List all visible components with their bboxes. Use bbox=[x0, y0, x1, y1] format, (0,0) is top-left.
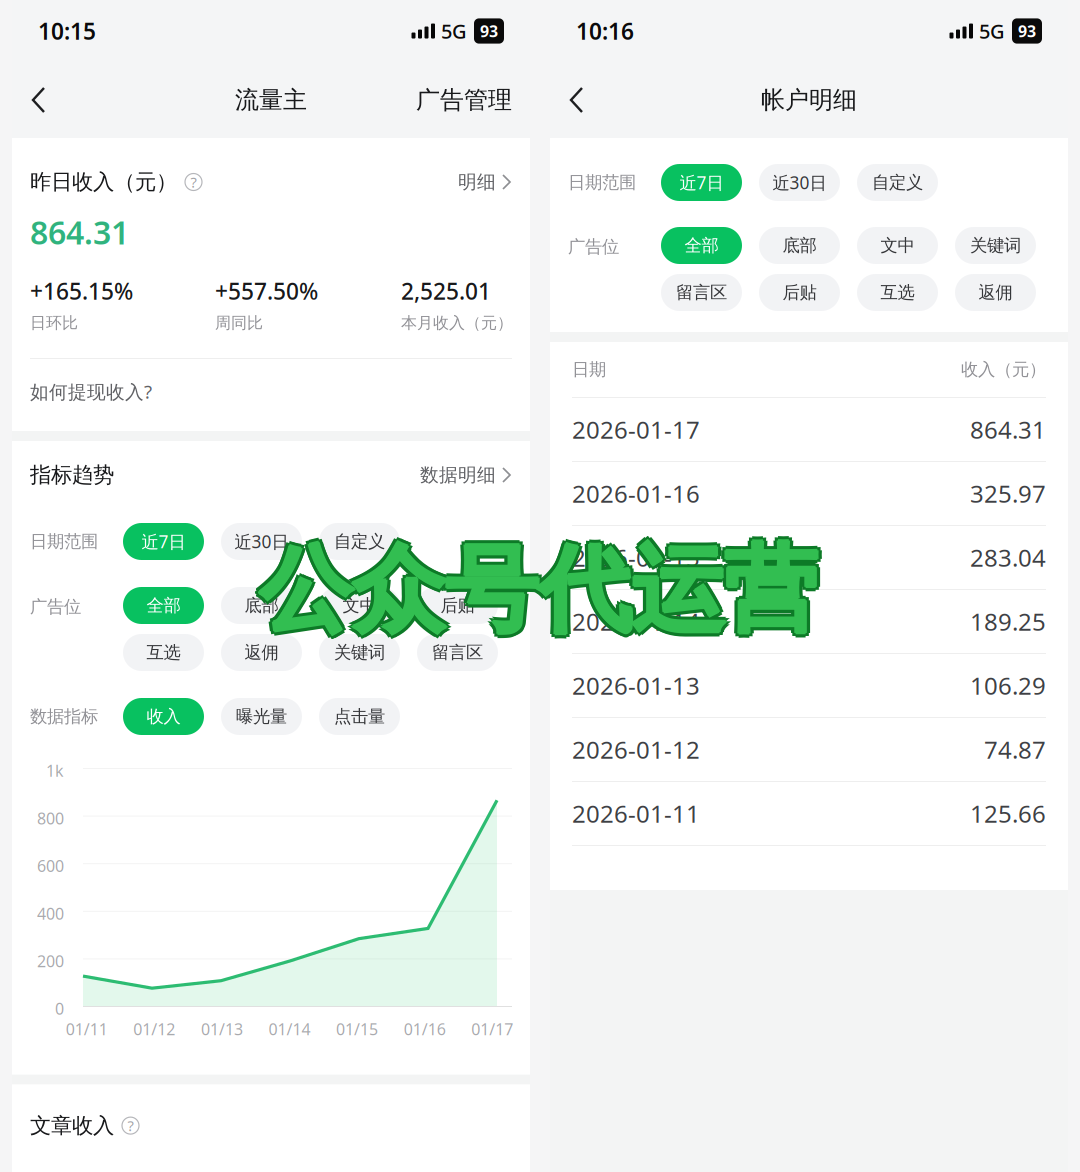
button[interactable]: 关键词 bbox=[955, 227, 1036, 264]
button[interactable]: 底部 bbox=[759, 227, 840, 264]
button[interactable]: 近7日 bbox=[661, 164, 742, 201]
staticText: 2026-01-16 bbox=[572, 478, 700, 509]
staticText: 文章收入 bbox=[30, 1112, 114, 1139]
staticText: 流量主 bbox=[235, 85, 307, 115]
staticText: 广告位 bbox=[568, 236, 619, 257]
button[interactable]: 后贴 bbox=[417, 587, 498, 624]
button[interactable]: 近7日 bbox=[123, 523, 204, 560]
button[interactable]: 2026-01-15 bbox=[550, 526, 1068, 590]
staticText: 近30日 bbox=[234, 530, 288, 553]
staticText: 2026-01-12 bbox=[572, 734, 700, 765]
button[interactable]: 互选 bbox=[857, 274, 938, 311]
staticText: 日期范围 bbox=[568, 172, 636, 193]
staticText: ? bbox=[127, 1116, 133, 1135]
button[interactable]: 留言区 bbox=[661, 274, 742, 311]
button[interactable]: 互选 bbox=[123, 634, 204, 671]
staticText: 93 bbox=[1018, 20, 1036, 42]
staticText: +557.50% bbox=[215, 276, 318, 306]
button[interactable]: 自定义 bbox=[857, 164, 938, 201]
button[interactable]: 文中 bbox=[319, 587, 400, 624]
staticText: 公众号代运营 bbox=[256, 530, 814, 644]
staticText: 曝光量 bbox=[236, 706, 287, 727]
staticText: 公众号代运营 bbox=[263, 533, 821, 648]
staticText: 指标趋势 bbox=[30, 462, 114, 488]
button[interactable]: 明细 bbox=[458, 170, 512, 193]
staticText: 01/17 bbox=[471, 1018, 513, 1040]
button[interactable]: 广告管理 bbox=[416, 75, 512, 125]
staticText: 200 bbox=[37, 950, 64, 972]
staticText: 日环比 bbox=[30, 313, 78, 333]
staticText: 数据明细 bbox=[420, 463, 496, 486]
staticText: 2026-01-11 bbox=[572, 798, 700, 829]
staticText: 公众号代运营 bbox=[260, 533, 818, 648]
staticText: 864.31 bbox=[30, 211, 129, 253]
button[interactable]: Back bbox=[30, 75, 65, 125]
button[interactable]: 数据明细 bbox=[420, 463, 512, 486]
button[interactable]: 留言区 bbox=[417, 634, 498, 671]
staticText: 864.31 bbox=[970, 414, 1046, 445]
staticText: 返佣 bbox=[978, 282, 1012, 303]
staticText: 01/15 bbox=[336, 1018, 378, 1040]
staticText: 2,525.01 bbox=[401, 276, 491, 306]
button[interactable]: 关键词 bbox=[319, 634, 400, 671]
staticText: 留言区 bbox=[676, 282, 727, 303]
button[interactable]: 2026-01-11 bbox=[550, 782, 1068, 846]
staticText: 关键词 bbox=[334, 642, 385, 663]
staticText: 189.25 bbox=[970, 606, 1046, 637]
staticText: 公众号代运营 bbox=[259, 534, 817, 649]
staticText: 公众号代运营 bbox=[256, 536, 814, 651]
button[interactable]: 返佣 bbox=[221, 634, 302, 671]
staticText: 周同比 bbox=[215, 313, 263, 333]
staticText: 10:15 bbox=[38, 16, 96, 46]
staticText: 收入（元） bbox=[961, 359, 1046, 380]
staticText: 5G bbox=[979, 18, 1005, 44]
staticText: 106.29 bbox=[970, 670, 1046, 701]
staticText: 自定义 bbox=[872, 172, 923, 193]
staticText: 10:16 bbox=[576, 16, 634, 46]
staticText: 返佣 bbox=[244, 642, 278, 663]
staticText: 本月收入（元） bbox=[401, 313, 513, 333]
staticText: 2026-01-17 bbox=[572, 414, 700, 445]
staticText: 01/12 bbox=[133, 1018, 175, 1040]
staticText: 广告位 bbox=[30, 596, 81, 617]
button[interactable]: 近30日 bbox=[759, 164, 840, 201]
staticText: 后贴 bbox=[440, 595, 474, 616]
staticText: 后贴 bbox=[782, 282, 816, 303]
button[interactable]: 文中 bbox=[857, 227, 938, 264]
button[interactable]: 收入 bbox=[123, 698, 204, 735]
button[interactable]: 2026-01-14 bbox=[550, 590, 1068, 654]
staticText: 日期范围 bbox=[30, 531, 98, 552]
staticText: 公众号代运营 bbox=[259, 528, 817, 643]
button[interactable]: 点击量 bbox=[319, 698, 400, 735]
staticText: 93 bbox=[480, 20, 498, 42]
staticText: 01/14 bbox=[268, 1018, 310, 1040]
button[interactable]: 2026-01-12 bbox=[550, 718, 1068, 782]
button[interactable]: 返佣 bbox=[955, 274, 1036, 311]
staticText: 全部 bbox=[684, 235, 718, 256]
staticText: 800 bbox=[37, 808, 64, 829]
button[interactable]: 自定义 bbox=[319, 523, 400, 560]
staticText: 1k bbox=[46, 760, 64, 781]
staticText: 公众号代运营 bbox=[259, 533, 817, 648]
staticText: 全部 bbox=[146, 595, 180, 616]
button[interactable]: 如何提现收入? bbox=[30, 359, 512, 431]
button[interactable]: 曝光量 bbox=[221, 698, 302, 735]
button[interactable]: 2026-01-17 bbox=[550, 398, 1068, 462]
button[interactable]: 2026-01-13 bbox=[550, 654, 1068, 718]
staticText: 日期 bbox=[572, 359, 606, 380]
button[interactable]: 全部 bbox=[123, 587, 204, 624]
button[interactable]: 近30日 bbox=[221, 523, 302, 560]
staticText: 昨日收入（元） bbox=[30, 169, 177, 195]
staticText: 近7日 bbox=[141, 530, 185, 553]
staticText: 5G bbox=[441, 18, 467, 44]
button[interactable]: 底部 bbox=[221, 587, 302, 624]
staticText: 公众号代运营 bbox=[259, 537, 817, 652]
button[interactable]: 全部 bbox=[661, 227, 742, 264]
button[interactable]: 后贴 bbox=[759, 274, 840, 311]
button[interactable]: 2026-01-16 bbox=[550, 462, 1068, 526]
button[interactable]: Back bbox=[568, 75, 603, 125]
staticText: 公众号代运营 bbox=[262, 530, 820, 644]
staticText: 如何提现收入? bbox=[30, 379, 152, 404]
staticText: 点击量 bbox=[334, 706, 385, 727]
staticText: 公众号代运营 bbox=[258, 533, 816, 648]
